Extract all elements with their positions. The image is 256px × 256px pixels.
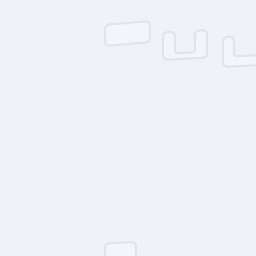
button[interactable]: Card <box>105 21 150 46</box>
button[interactable]: Shape L <box>223 35 256 67</box>
button[interactable]: Card <box>105 242 136 256</box>
button[interactable]: Shape U <box>163 30 207 60</box>
